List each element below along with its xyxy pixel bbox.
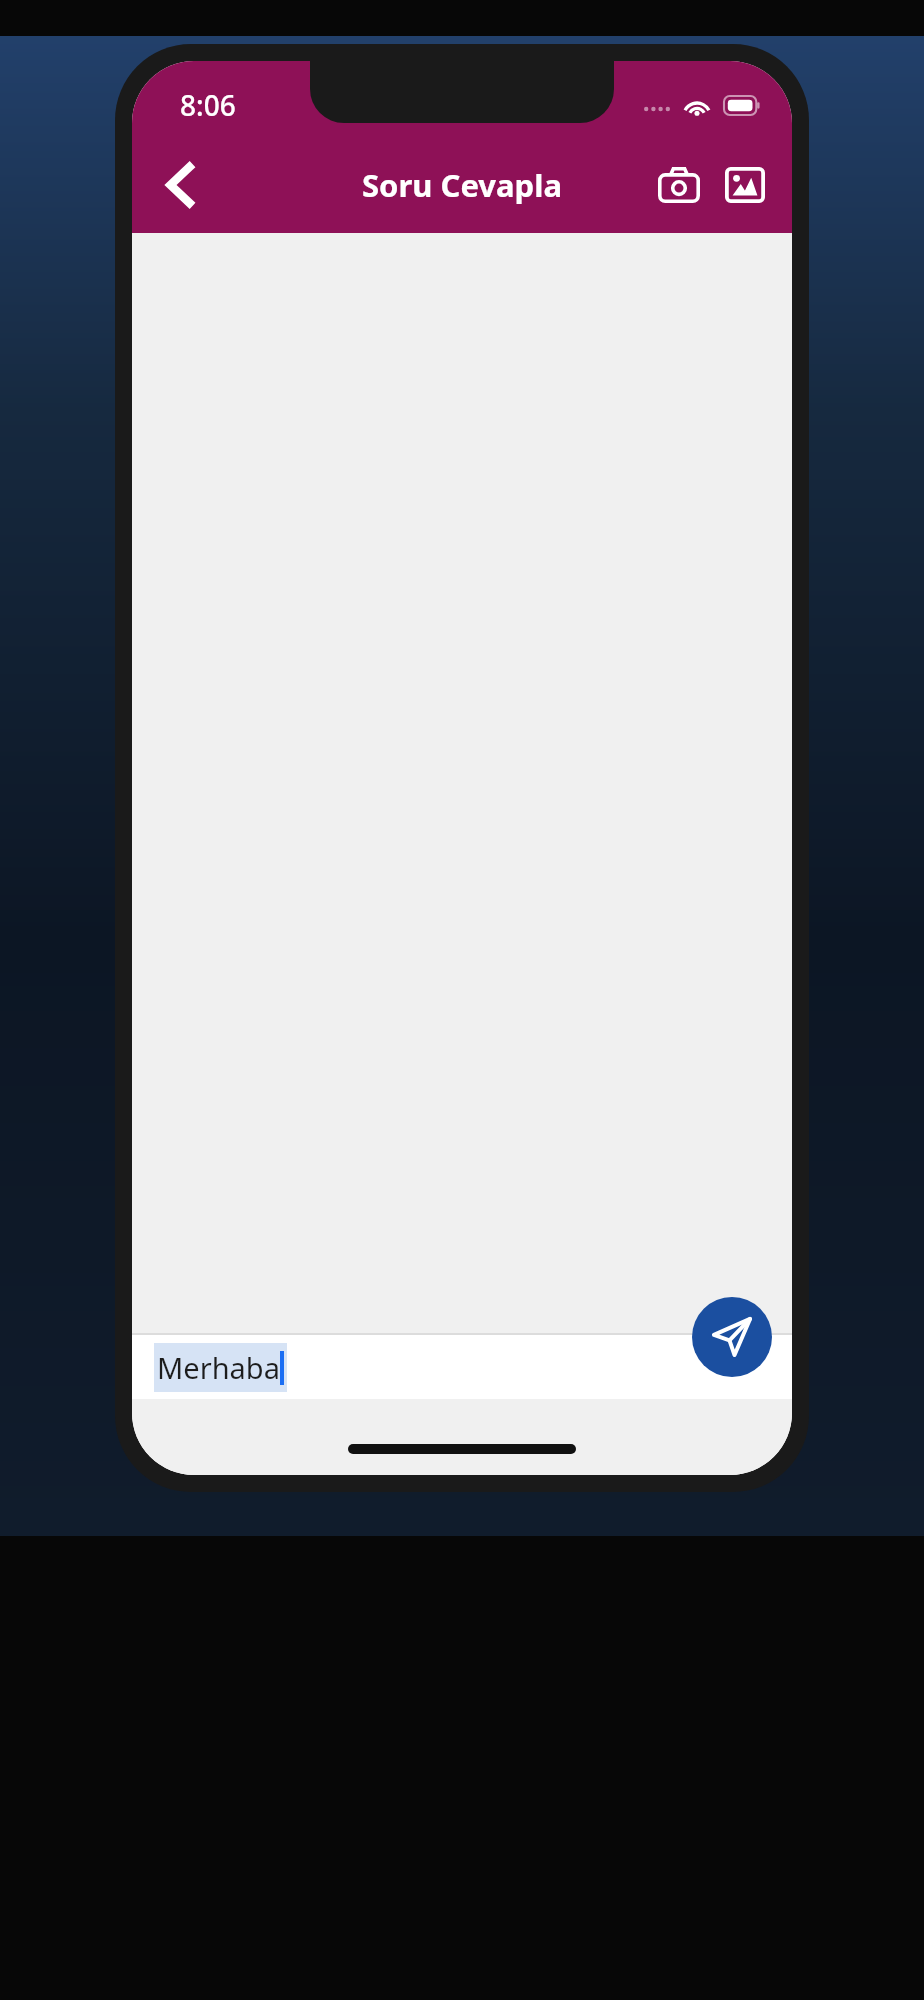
button[interactable]: Pick image <box>712 152 778 218</box>
button[interactable]: Back <box>148 153 212 217</box>
button[interactable]: Merhaba <box>154 1343 287 1392</box>
button[interactable]: Take photo <box>646 152 712 218</box>
staticText: 8:06 <box>180 86 236 124</box>
staticText: Merhaba <box>157 1348 280 1387</box>
button[interactable]: Send <box>692 1297 772 1377</box>
staticText: Soru Cevapla <box>362 164 562 206</box>
